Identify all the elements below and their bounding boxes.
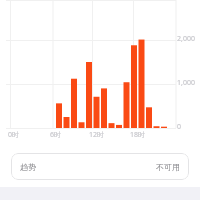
- staticText: 18时: [130, 130, 146, 140]
- staticText: 趋势: [20, 162, 36, 172]
- staticText: 不可用: [156, 162, 180, 172]
- staticText: 6时: [50, 130, 62, 140]
- staticText: 12时: [89, 130, 105, 140]
- staticText: 0: [177, 122, 182, 132]
- button[interactable]: 趋势: [11, 153, 189, 180]
- staticText: 2,000: [177, 34, 195, 44]
- staticText: 1,000: [177, 78, 195, 88]
- staticText: 0时: [8, 130, 20, 140]
